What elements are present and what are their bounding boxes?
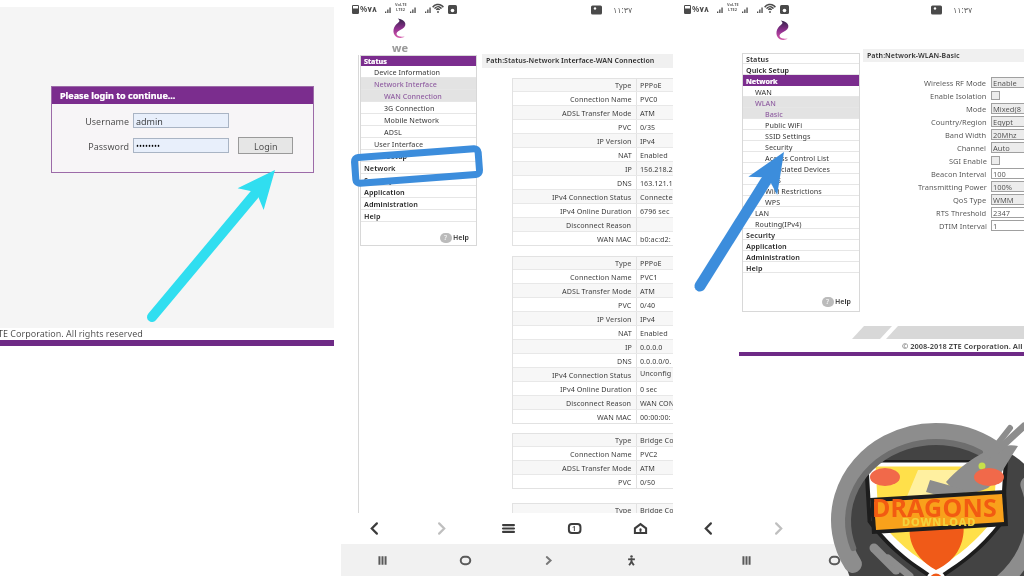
button[interactable]: Security [360,174,477,186]
staticText: LTE2 [396,7,405,12]
button[interactable]: Egypt [991,116,1024,127]
button[interactable]: LAN [742,207,860,218]
button[interactable]: Associated Devices [742,163,860,174]
button[interactable]: Quick Setup [742,64,860,75]
button[interactable]: •••••••• [133,138,229,153]
button[interactable]: WiFi Restrictions [742,185,860,196]
button[interactable]: 20Mhz [991,129,1024,140]
staticText: Type [615,258,632,268]
button[interactable]: admin [133,113,229,128]
button[interactable]: WMM [991,194,1024,205]
button[interactable]: Status [742,53,860,64]
staticText: Help [364,211,381,221]
button[interactable]: Security [742,141,860,152]
staticText: Password [51,140,129,152]
staticText: Security [765,142,793,152]
button[interactable]: Forward navigation [878,544,966,576]
staticText: admin [136,115,163,127]
staticText: •••••••• [136,140,161,151]
button[interactable]: WAN Connection [360,90,477,102]
button[interactable]: SSID Settings [742,130,860,141]
staticText: Disconnect Reason [566,220,632,230]
staticText: Band Width [945,130,987,140]
button[interactable]: WDS [742,174,860,185]
staticText: ADSL Transfer Mode [562,286,632,296]
staticText: 0.0.0.0 [640,342,663,352]
button[interactable]: Login [238,137,293,154]
button[interactable]: Forward [743,513,814,544]
button[interactable]: Help [360,210,477,222]
button[interactable]: Mobile Network [360,114,477,126]
button[interactable]: Mixed(8 [991,103,1024,114]
button[interactable]: ? [440,233,470,243]
button[interactable]: Tabs [541,513,607,544]
button[interactable]: User Interface [360,138,477,150]
button[interactable]: Network [742,75,860,86]
staticText: SSID Settings [765,131,811,141]
button[interactable]: SGI Enable [991,156,1000,165]
button[interactable]: Routing(IPv4) [742,218,860,229]
button[interactable]: Status [360,55,477,66]
button[interactable]: Application [742,240,860,251]
button[interactable]: Home [607,513,673,544]
button[interactable]: Network [360,162,477,174]
staticText: QoS Type [953,195,987,205]
button[interactable]: Basic [742,108,860,119]
button[interactable]: Recents [341,544,424,576]
button[interactable]: Home screen [424,544,507,576]
button[interactable]: Administration [742,251,860,262]
button[interactable]: Back [341,513,408,544]
staticText: 0 sec [640,384,658,394]
staticText: WAN [755,87,772,97]
button[interactable]: Accessibility [966,544,1024,576]
button[interactable]: Forward navigation [507,544,590,576]
button[interactable]: Recents [703,544,790,576]
button[interactable]: Menu [475,513,541,544]
button[interactable]: ? [822,297,852,307]
button[interactable]: WAN [742,86,860,97]
button[interactable]: ADSL [360,126,477,138]
button[interactable]: Accessibility [590,544,673,576]
button[interactable]: Device Information [360,66,477,78]
button[interactable]: Menu [814,513,885,544]
button[interactable]: Public WiFi [742,119,860,130]
button[interactable]: Forward [408,513,475,544]
staticText: Username [51,115,129,127]
button[interactable]: Enable [991,77,1024,88]
button[interactable]: Application [360,186,477,198]
button[interactable]: 2347 [991,207,1024,218]
staticText: Beacon Interval [931,169,987,179]
button[interactable]: Help [742,262,860,273]
staticText: Network [364,163,396,173]
button[interactable]: Home screen [790,544,878,576]
staticText: Enabled [640,150,668,160]
staticText: Connection Name [570,449,632,459]
staticText: VoLTE [727,2,739,7]
button[interactable]: WPS [742,196,860,207]
button[interactable]: Administration [360,198,477,210]
staticText: Access Control List [765,153,830,163]
button[interactable]: 100 [991,168,1024,179]
staticText: LAN [755,208,770,218]
staticText: Status [364,56,387,66]
staticText: Disconnect Reason [566,398,632,408]
staticText: Help [453,233,470,243]
button[interactable]: 100% [991,181,1024,192]
staticText: IPv4 Online Duration [560,206,632,216]
button[interactable]: Security [742,229,860,240]
button[interactable]: Enable Isolation [991,91,1000,100]
button[interactable]: Network Interface [360,78,477,90]
button[interactable]: Quick Setup [360,150,477,162]
staticText: NAT [618,150,632,160]
button[interactable]: 3G Connection [360,102,477,114]
staticText: b0:ac:d2: [640,234,671,244]
staticText: Application [364,187,405,197]
staticText: DTIM Interval [939,221,987,231]
button[interactable]: Back [673,513,743,544]
button[interactable]: Access Control List [742,152,860,163]
button[interactable]: 1 [991,220,1024,231]
button[interactable]: WLAN [742,97,860,108]
button[interactable]: Auto [991,142,1024,153]
staticText: WAN CON [640,398,673,408]
staticText: Type [615,435,632,445]
